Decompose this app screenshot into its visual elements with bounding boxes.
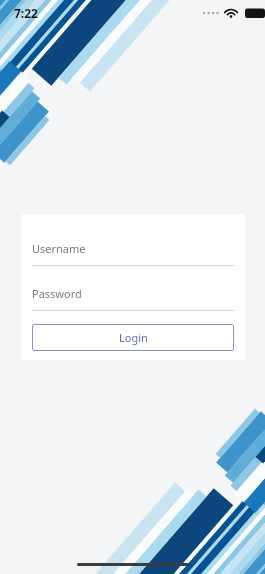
button[interactable]: Password [32,286,234,311]
staticText: Login [119,330,148,345]
staticText: Username [32,241,86,256]
button[interactable]: Login [32,324,234,351]
staticText: 7:22 [14,5,38,21]
button[interactable]: Username [32,241,234,266]
staticText: Password [32,286,82,301]
